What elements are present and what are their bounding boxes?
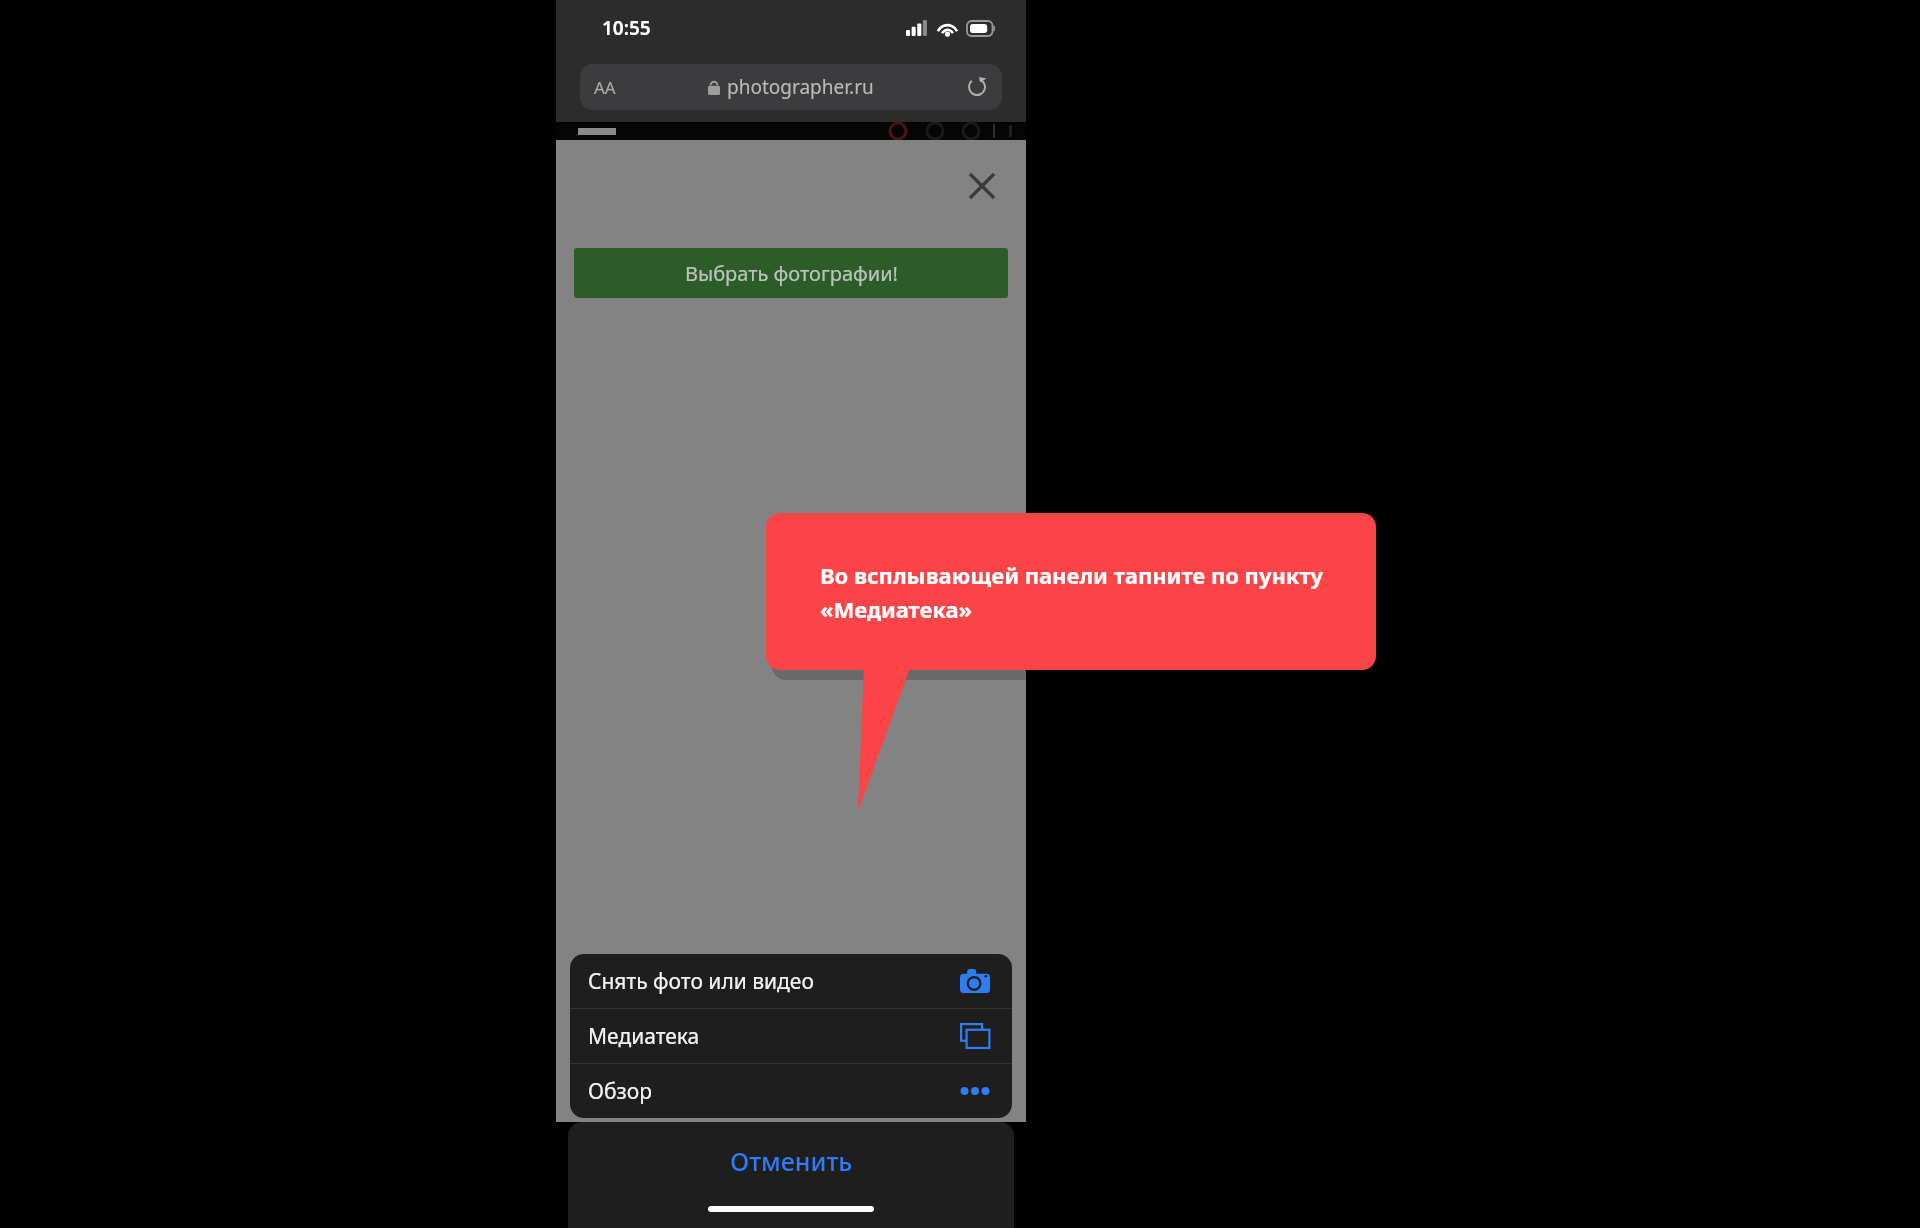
button[interactable]: Отменить (568, 1122, 1014, 1228)
button[interactable]: Обзор (570, 1064, 1012, 1118)
staticText: Снять фото или видео (588, 967, 814, 996)
staticText: Выбрать фотографии! (685, 260, 898, 287)
staticText: Обзор (588, 1077, 653, 1106)
button[interactable]: Close (960, 164, 1004, 208)
button[interactable]: АA (580, 64, 1002, 110)
staticText: Отменить (730, 1144, 853, 1178)
staticText: АA (594, 76, 616, 99)
staticText: photographer.ru (727, 74, 874, 100)
button[interactable]: Reload (962, 72, 992, 102)
staticText: Медиатека (588, 1022, 700, 1051)
button[interactable]: Медиатека (570, 1009, 1012, 1063)
staticText: 10:55 (602, 15, 651, 41)
button[interactable]: Во всплывающей панели тапните по пункту … (766, 513, 1376, 670)
staticText: Во всплывающей панели тапните по пункту … (820, 560, 1346, 624)
button[interactable]: Снять фото или видео (570, 954, 1012, 1008)
button[interactable]: Выбрать фотографии! (574, 248, 1008, 298)
